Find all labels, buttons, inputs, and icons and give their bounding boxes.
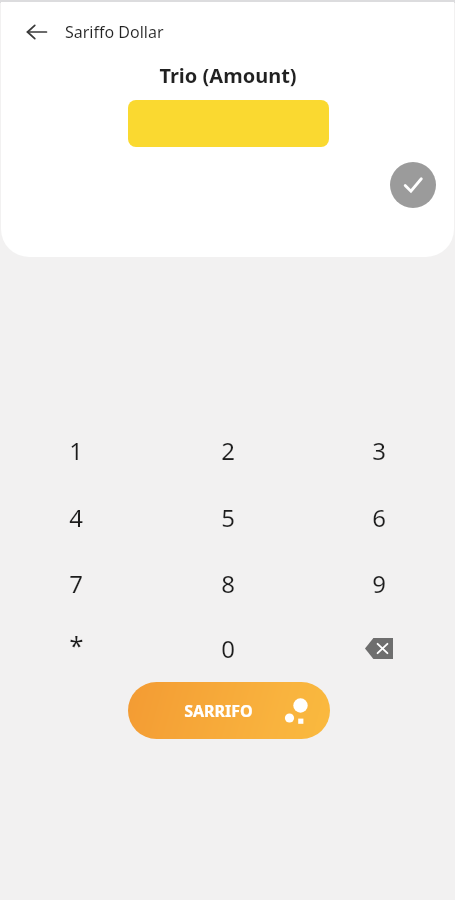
button[interactable]: Backspace: [329, 617, 429, 679]
button[interactable]: Confirm: [390, 162, 436, 208]
button[interactable]: 9: [329, 552, 429, 614]
staticText: Sariffo Dollar: [65, 21, 164, 43]
staticText: 5: [221, 501, 235, 534]
button[interactable]: Back: [18, 13, 56, 51]
staticText: SARRIFO: [184, 700, 253, 722]
staticText: 0: [221, 632, 235, 665]
staticText: 1: [69, 434, 83, 467]
staticText: 8: [221, 567, 235, 600]
button[interactable]: 7: [26, 552, 126, 614]
staticText: 9: [372, 567, 386, 600]
button[interactable]: 1: [26, 419, 126, 481]
button[interactable]: 8: [178, 552, 278, 614]
button[interactable]: 0: [178, 617, 278, 679]
staticText: 2: [221, 434, 235, 467]
button[interactable]: 5: [178, 486, 278, 548]
button[interactable]: [128, 100, 329, 147]
staticText: 7: [69, 567, 83, 600]
button[interactable]: SARRIFO: [128, 682, 330, 739]
button[interactable]: 4: [26, 486, 126, 548]
staticText: Trio (Amount): [159, 62, 297, 89]
staticText: 3: [372, 434, 386, 467]
staticText: 4: [69, 501, 83, 534]
button[interactable]: *: [26, 617, 126, 679]
button[interactable]: 6: [329, 486, 429, 548]
staticText: 6: [372, 501, 386, 534]
staticText: *: [69, 627, 84, 662]
button[interactable]: 3: [329, 419, 429, 481]
button[interactable]: 2: [178, 419, 278, 481]
